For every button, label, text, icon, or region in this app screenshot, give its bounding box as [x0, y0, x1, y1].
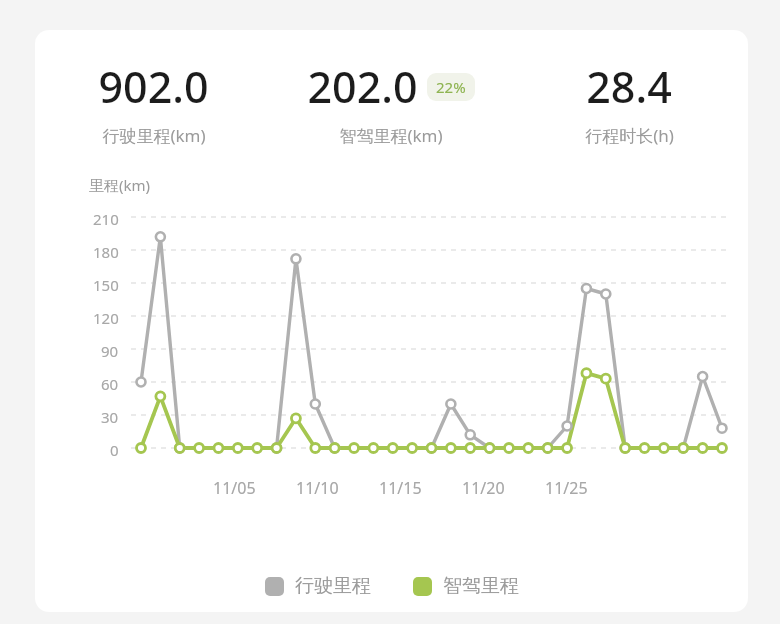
button[interactable]: 智驾里程 [413, 574, 519, 598]
staticText: 里程(km) [89, 175, 151, 195]
button[interactable]: 202.0 [272, 57, 510, 147]
button[interactable]: 902.0 [35, 57, 272, 147]
staticText: 30 [101, 407, 119, 427]
staticText: 智驾里程 [443, 574, 519, 598]
staticText: 202.0 [307, 57, 418, 116]
staticText: 行程时长(h) [585, 124, 674, 147]
button[interactable]: 行驶里程 [265, 574, 371, 598]
staticText: 180 [93, 242, 119, 262]
staticText: 22% [436, 77, 466, 97]
staticText: 150 [93, 275, 119, 295]
staticText: 120 [93, 308, 119, 328]
staticText: 11/05 [213, 477, 256, 499]
staticText: 0 [110, 440, 119, 460]
button[interactable]: 28.4 [510, 57, 748, 147]
staticText: 11/10 [296, 477, 339, 499]
staticText: 智驾里程(km) [339, 124, 443, 147]
staticText: 28.4 [586, 57, 672, 116]
staticText: 90 [101, 341, 119, 361]
staticText: 60 [101, 374, 119, 394]
staticText: 902.0 [98, 57, 209, 116]
staticText: 行驶里程 [295, 574, 371, 598]
staticText: 11/15 [379, 477, 422, 499]
staticText: 行驶里程(km) [102, 124, 206, 147]
staticText: 210 [93, 209, 119, 229]
staticText: 11/20 [462, 477, 505, 499]
staticText: 11/25 [545, 477, 588, 499]
